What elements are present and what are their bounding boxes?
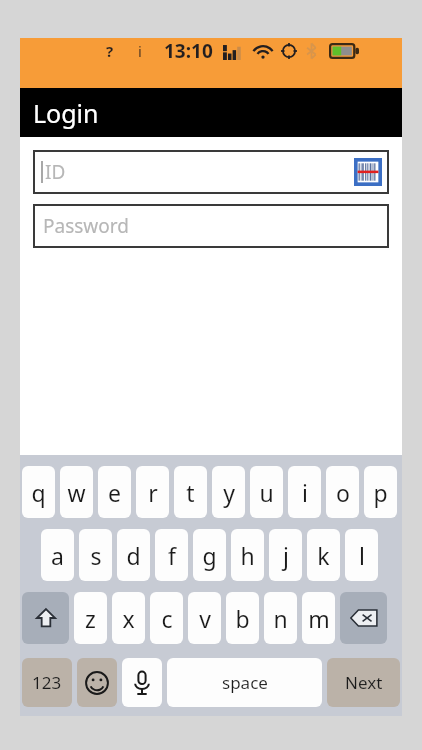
staticText: g bbox=[202, 540, 217, 571]
button[interactable]: 123 bbox=[22, 658, 72, 707]
button[interactable]: space bbox=[167, 658, 322, 707]
button[interactable]: u bbox=[250, 466, 283, 518]
button[interactable]: Emoji bbox=[77, 658, 117, 707]
staticText: q bbox=[31, 477, 46, 508]
staticText: 13:10 bbox=[164, 38, 213, 64]
button[interactable]: m bbox=[302, 592, 335, 644]
button[interactable]: y bbox=[212, 466, 245, 518]
staticText: ? bbox=[106, 41, 114, 61]
staticText: f bbox=[168, 540, 176, 571]
button[interactable]: q bbox=[22, 466, 55, 518]
button[interactable]: Next bbox=[327, 658, 400, 707]
staticText: Password bbox=[43, 213, 129, 239]
staticText: ID bbox=[45, 159, 66, 185]
button[interactable]: r bbox=[136, 466, 169, 518]
button[interactable]: i bbox=[288, 466, 321, 518]
button[interactable]: k bbox=[307, 529, 340, 581]
staticText: space bbox=[222, 671, 268, 694]
button[interactable]: ID bbox=[33, 150, 389, 194]
button[interactable]: w bbox=[60, 466, 93, 518]
button[interactable]: j bbox=[269, 529, 302, 581]
button[interactable]: s bbox=[79, 529, 112, 581]
staticText: x bbox=[122, 603, 135, 634]
button[interactable]: z bbox=[74, 592, 107, 644]
button[interactable]: b bbox=[226, 592, 259, 644]
staticText: i bbox=[138, 41, 142, 61]
staticText: n bbox=[273, 603, 288, 634]
button[interactable]: Scan barcode bbox=[353, 157, 383, 187]
staticText: s bbox=[90, 540, 102, 571]
staticText: b bbox=[235, 603, 250, 634]
staticText: v bbox=[199, 603, 211, 634]
staticText: r bbox=[148, 477, 158, 508]
button[interactable]: t bbox=[174, 466, 207, 518]
button[interactable]: n bbox=[264, 592, 297, 644]
staticText: m bbox=[308, 603, 330, 634]
button[interactable]: h bbox=[231, 529, 264, 581]
staticText: i bbox=[302, 477, 308, 508]
staticText: z bbox=[85, 603, 96, 634]
button[interactable]: g bbox=[193, 529, 226, 581]
staticText: o bbox=[336, 477, 350, 508]
staticText: l bbox=[359, 540, 365, 571]
staticText: j bbox=[283, 540, 289, 571]
button[interactable]: Password bbox=[33, 204, 389, 248]
staticText: h bbox=[240, 540, 255, 571]
staticText: Next bbox=[345, 671, 383, 694]
button[interactable]: d bbox=[117, 529, 150, 581]
button[interactable]: p bbox=[364, 466, 397, 518]
button[interactable]: f bbox=[155, 529, 188, 581]
button[interactable]: a bbox=[41, 529, 74, 581]
button[interactable]: Shift bbox=[22, 592, 69, 644]
button[interactable]: c bbox=[150, 592, 183, 644]
staticText: 123 bbox=[32, 671, 62, 694]
button[interactable]: l bbox=[345, 529, 378, 581]
staticText: k bbox=[317, 540, 330, 571]
staticText: e bbox=[108, 477, 121, 508]
staticText: t bbox=[186, 477, 195, 508]
staticText: a bbox=[51, 540, 64, 571]
button[interactable]: Backspace bbox=[340, 592, 387, 644]
staticText: p bbox=[373, 477, 388, 508]
button[interactable]: x bbox=[112, 592, 145, 644]
button[interactable]: o bbox=[326, 466, 359, 518]
staticText: y bbox=[223, 477, 235, 508]
button[interactable]: e bbox=[98, 466, 131, 518]
button[interactable]: v bbox=[188, 592, 221, 644]
staticText: c bbox=[161, 603, 173, 634]
button[interactable]: Voice input bbox=[122, 658, 162, 707]
staticText: w bbox=[67, 477, 86, 508]
staticText: d bbox=[126, 540, 141, 571]
staticText: u bbox=[259, 477, 274, 508]
staticText: Login bbox=[33, 96, 99, 130]
